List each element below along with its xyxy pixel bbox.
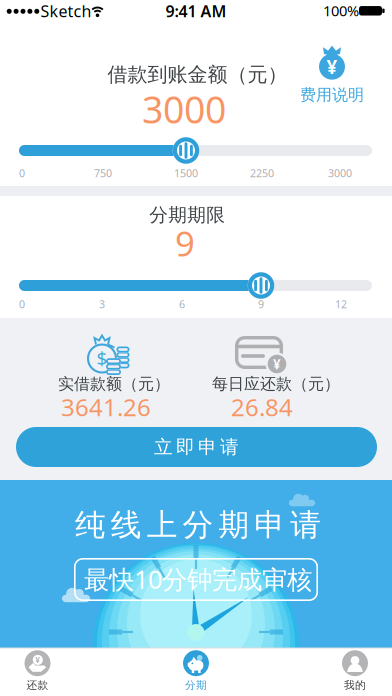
staticText: 9:41 AM: [165, 0, 226, 22]
staticText: 9: [258, 297, 264, 311]
staticText: 我的: [344, 679, 366, 692]
button[interactable]: 分期期限滑块: [248, 272, 274, 299]
staticText: $: [96, 346, 107, 370]
staticText: 纯线上分期申请: [75, 506, 321, 544]
staticText: 分期期限: [149, 203, 225, 226]
staticText: 3000: [142, 84, 226, 134]
button[interactable]: 立即申请: [16, 427, 377, 467]
staticText: 2250: [250, 166, 274, 180]
staticText: 借款到账金额（元）: [107, 62, 287, 87]
staticText: 9: [175, 220, 195, 266]
staticText: 最快10分钟完成审核: [84, 562, 312, 596]
staticText: 分期: [185, 679, 207, 692]
staticText: 立即申请: [154, 435, 239, 458]
button[interactable]: ¥: [24, 650, 50, 692]
staticText: 750: [94, 166, 112, 180]
staticText: ¥: [35, 655, 40, 665]
staticText: 还款: [26, 679, 48, 692]
button[interactable]: 分期: [183, 650, 209, 692]
staticText: 0: [19, 166, 25, 180]
staticText: 6: [179, 297, 185, 311]
staticText: 0: [19, 297, 25, 311]
button[interactable]: 我的: [342, 650, 368, 692]
staticText: Sketch: [40, 0, 91, 22]
staticText: ¥: [273, 355, 281, 373]
button[interactable]: ¥: [300, 42, 364, 105]
staticText: ¥: [326, 54, 337, 79]
staticText: 费用说明: [300, 85, 364, 105]
staticText: 3: [99, 297, 105, 311]
button[interactable]: 借款金额滑块: [173, 137, 199, 164]
staticText: 100%: [323, 1, 359, 20]
staticText: 26.84: [231, 391, 293, 423]
staticText: 实借款额（元）: [58, 374, 170, 394]
staticText: 1500: [174, 166, 198, 180]
staticText: 12: [335, 297, 347, 311]
staticText: 3641.26: [61, 391, 151, 423]
staticText: 每日应还款（元）: [212, 374, 340, 394]
staticText: 3000: [328, 166, 352, 180]
